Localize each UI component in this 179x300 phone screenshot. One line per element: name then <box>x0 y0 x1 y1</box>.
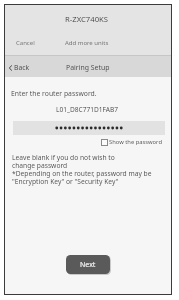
button[interactable]: Cancel <box>13 36 38 50</box>
button[interactable]: Add more units <box>62 36 112 50</box>
staticText: Next <box>80 260 96 270</box>
staticText: R-ZXC740KS <box>65 14 109 24</box>
button[interactable] <box>13 121 165 135</box>
staticText: Leave blank if you do not wish to change… <box>12 153 152 186</box>
staticText: Back <box>14 63 30 72</box>
button[interactable]: Next <box>66 255 110 274</box>
staticText: Show the password <box>109 138 162 146</box>
button[interactable]: Show the password <box>99 136 164 148</box>
staticText: Add more units <box>65 39 109 47</box>
staticText: Pairing Setup <box>66 63 110 72</box>
button[interactable]: Back <box>7 61 32 74</box>
staticText: L01_D8C771D1FAB7 <box>56 105 119 114</box>
staticText: Enter the router password. <box>11 89 97 98</box>
staticText: Cancel <box>16 39 35 47</box>
